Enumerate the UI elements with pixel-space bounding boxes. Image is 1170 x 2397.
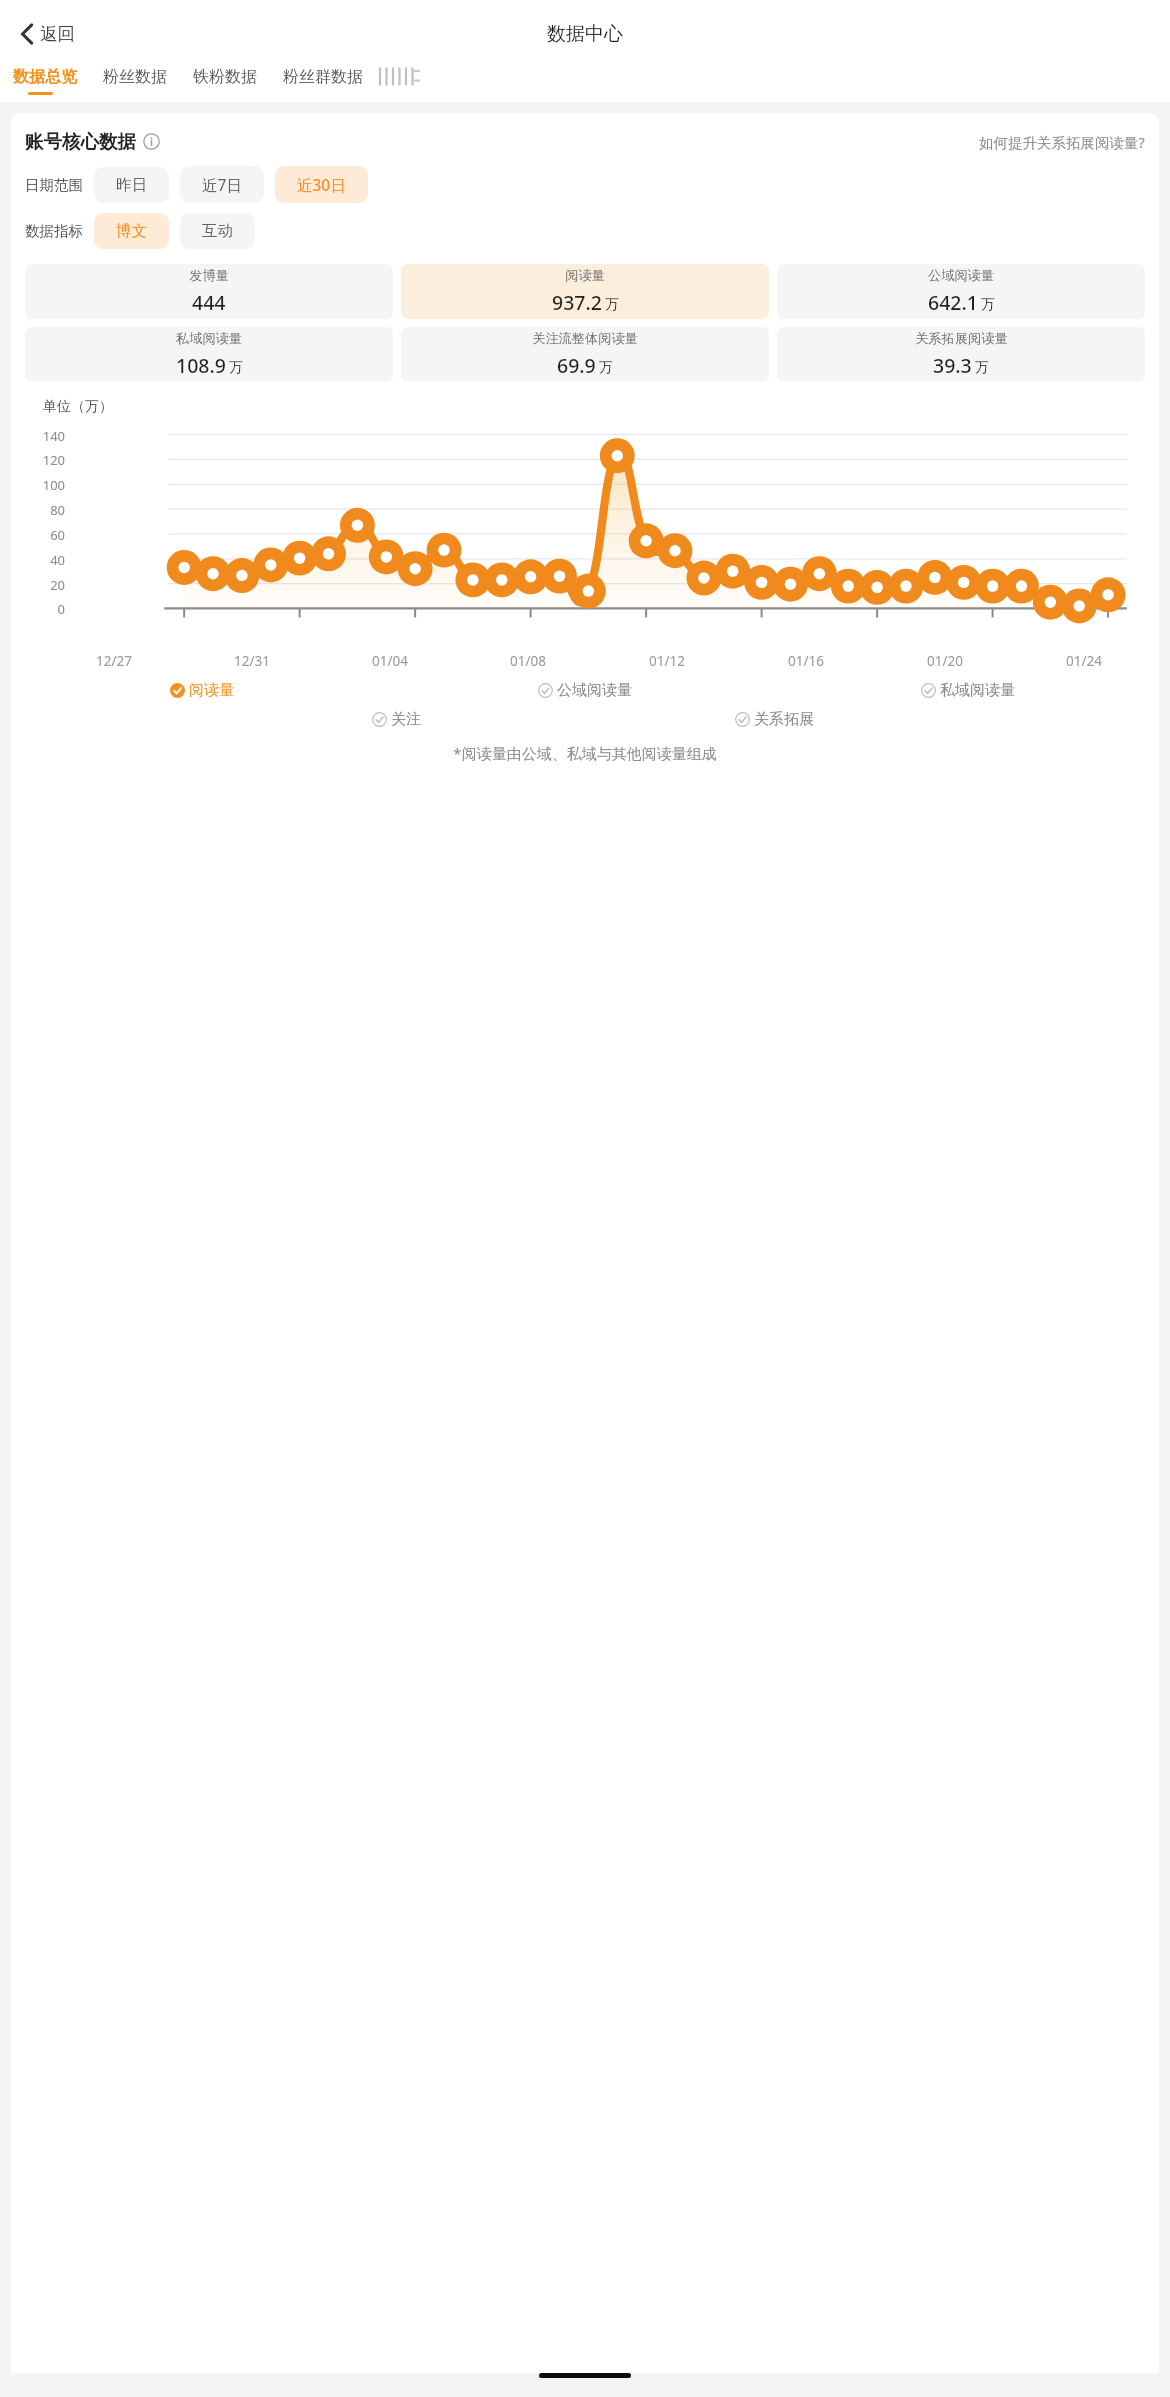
staticText: 昨日 <box>116 175 147 195</box>
button[interactable]: 粉丝数据 <box>103 62 167 92</box>
button[interactable]: 返回 <box>14 18 81 50</box>
button[interactable]: 粉丝群数据 <box>283 62 363 92</box>
button[interactable]: 铁粉数据 <box>193 62 257 92</box>
staticText: 关系拓展阅读量 <box>915 330 1008 347</box>
staticText: 140 <box>23 427 65 445</box>
staticText: 发博量 <box>189 267 229 284</box>
button[interactable]: 阅读量 <box>401 264 769 319</box>
button[interactable]: 私域阅读量 <box>921 681 1015 700</box>
button[interactable]: 公域阅读量 <box>777 264 1145 319</box>
button[interactable]: 近30日 <box>275 166 368 203</box>
staticText: 40 <box>23 551 65 569</box>
staticText: 0 <box>23 600 65 618</box>
staticText: 937.2 <box>552 289 602 316</box>
staticText: 69.9 <box>557 352 596 379</box>
button[interactable]: 关系拓展阅读量 <box>777 327 1145 382</box>
button[interactable]: 阅读量 <box>170 681 234 700</box>
staticText: 12/31 <box>234 652 270 670</box>
staticText: 单位（万） <box>43 398 113 416</box>
staticText: 粉丝群数据 <box>283 67 363 87</box>
staticText: 万 <box>605 296 619 314</box>
staticText: 互动 <box>202 221 233 241</box>
staticText: 01/16 <box>788 652 824 670</box>
staticText: 万 <box>229 359 243 377</box>
staticText: 万 <box>981 296 995 314</box>
staticText: 01/04 <box>372 652 408 670</box>
button[interactable]: 私域阅读量 <box>25 327 393 382</box>
button[interactable]: 近7日 <box>180 166 264 203</box>
staticText: 公域阅读量 <box>557 681 632 700</box>
staticText: 39.3 <box>933 352 972 379</box>
staticText: 01/24 <box>1066 652 1102 670</box>
staticText: *阅读量由公域、私域与其他阅读量组成 <box>11 743 1159 763</box>
staticText: 私域阅读量 <box>940 681 1015 700</box>
button[interactable]: 关注 <box>372 710 421 729</box>
staticText: 如何提升关系拓展阅读量? <box>979 132 1145 152</box>
staticText: 01/08 <box>510 652 546 670</box>
staticText: 博文 <box>116 221 147 241</box>
button[interactable]: 说明 <box>143 133 160 150</box>
staticText: 444 <box>192 289 226 316</box>
staticText: 100 <box>23 476 65 494</box>
staticText: 粉丝数据 <box>103 67 167 87</box>
staticText: 关系拓展 <box>754 710 814 729</box>
staticText: 12/27 <box>96 652 132 670</box>
staticText: 01/12 <box>649 652 685 670</box>
staticText: 万 <box>599 359 613 377</box>
staticText: 80 <box>23 501 65 519</box>
staticText: 近30日 <box>297 174 346 195</box>
staticText: 642.1 <box>928 289 978 316</box>
staticText: 关注流整体阅读量 <box>532 330 638 347</box>
button[interactable]: 发博量 <box>25 264 393 319</box>
staticText: 108.9 <box>176 352 226 379</box>
staticText: 阅读量 <box>565 267 605 284</box>
button[interactable]: 数据总览 <box>13 62 77 92</box>
staticText: 返回 <box>40 23 75 45</box>
staticText: 数据指标 <box>25 222 83 240</box>
staticText: 120 <box>23 451 65 469</box>
button[interactable]: 关系拓展 <box>735 710 814 729</box>
staticText: 数据总览 <box>13 67 77 87</box>
button[interactable]: 昨日 <box>94 167 169 203</box>
staticText: 账号核心数据 <box>25 130 136 153</box>
staticText: 铁粉数据 <box>193 67 257 87</box>
button[interactable]: 互动 <box>180 213 255 249</box>
staticText: 近7日 <box>202 174 242 195</box>
staticText: 公域阅读量 <box>928 267 994 284</box>
staticText: 01/20 <box>927 652 963 670</box>
button[interactable]: 公域阅读量 <box>538 681 632 700</box>
staticText: 万 <box>975 359 989 377</box>
staticText: 日期范围 <box>25 176 83 194</box>
staticText: 数据中心 <box>547 22 623 46</box>
staticText: 私域阅读量 <box>176 330 242 347</box>
button[interactable]: 博文 <box>94 213 169 249</box>
staticText: 60 <box>23 526 65 544</box>
button[interactable]: 如何提升关系拓展阅读量? <box>979 132 1145 152</box>
button[interactable]: 关注流整体阅读量 <box>401 327 769 382</box>
staticText: 阅读量 <box>189 681 234 700</box>
staticText: 关注 <box>391 710 421 729</box>
staticText: 20 <box>23 576 65 594</box>
